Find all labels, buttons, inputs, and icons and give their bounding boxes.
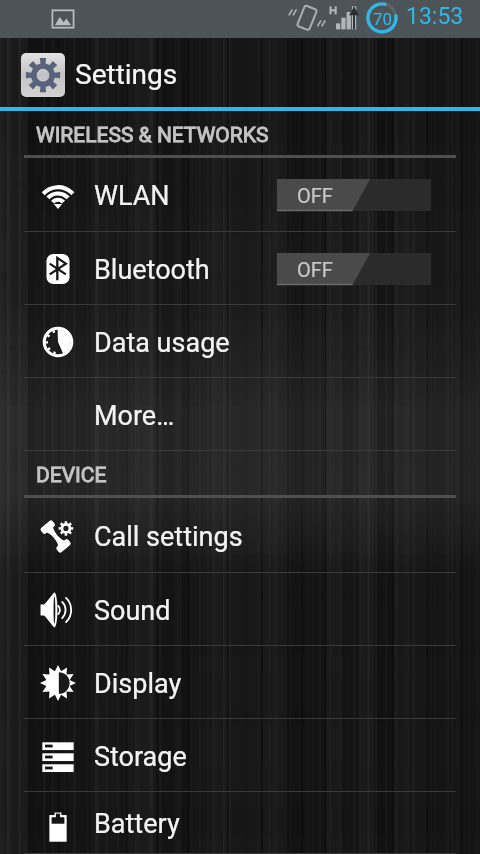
staticText: Data usage (94, 327, 230, 359)
button[interactable]: Bluetooth (0, 232, 480, 305)
staticText: Battery (94, 808, 180, 840)
button[interactable]: Sound (0, 573, 480, 646)
staticText: Sound (94, 595, 171, 627)
button[interactable]: More… (0, 378, 480, 451)
staticText: DEVICE (36, 463, 107, 488)
button[interactable]: Battery (0, 792, 480, 854)
staticText: More… (94, 400, 175, 432)
staticText: OFF (297, 184, 333, 207)
staticText: OFF (297, 258, 333, 281)
staticText: Bluetooth (94, 254, 210, 286)
button[interactable]: Call settings (0, 498, 480, 573)
button[interactable]: Storage (0, 719, 480, 792)
staticText: Call settings (94, 521, 243, 553)
staticText: Display (94, 668, 182, 700)
staticText: 13:53 (406, 3, 464, 30)
button[interactable]: Data usage (0, 305, 480, 378)
staticText: Storage (94, 741, 187, 773)
button[interactable]: OFF (277, 179, 431, 211)
staticText: WLAN (94, 180, 170, 212)
button[interactable]: Display (0, 646, 480, 719)
staticText: WIRELESS & NETWORKS (36, 123, 269, 148)
button[interactable]: WLAN (0, 158, 480, 232)
button[interactable]: Settings (0, 38, 480, 111)
staticText: Settings (75, 58, 178, 91)
staticText: 70 (373, 9, 393, 29)
button[interactable]: OFF (277, 253, 431, 285)
